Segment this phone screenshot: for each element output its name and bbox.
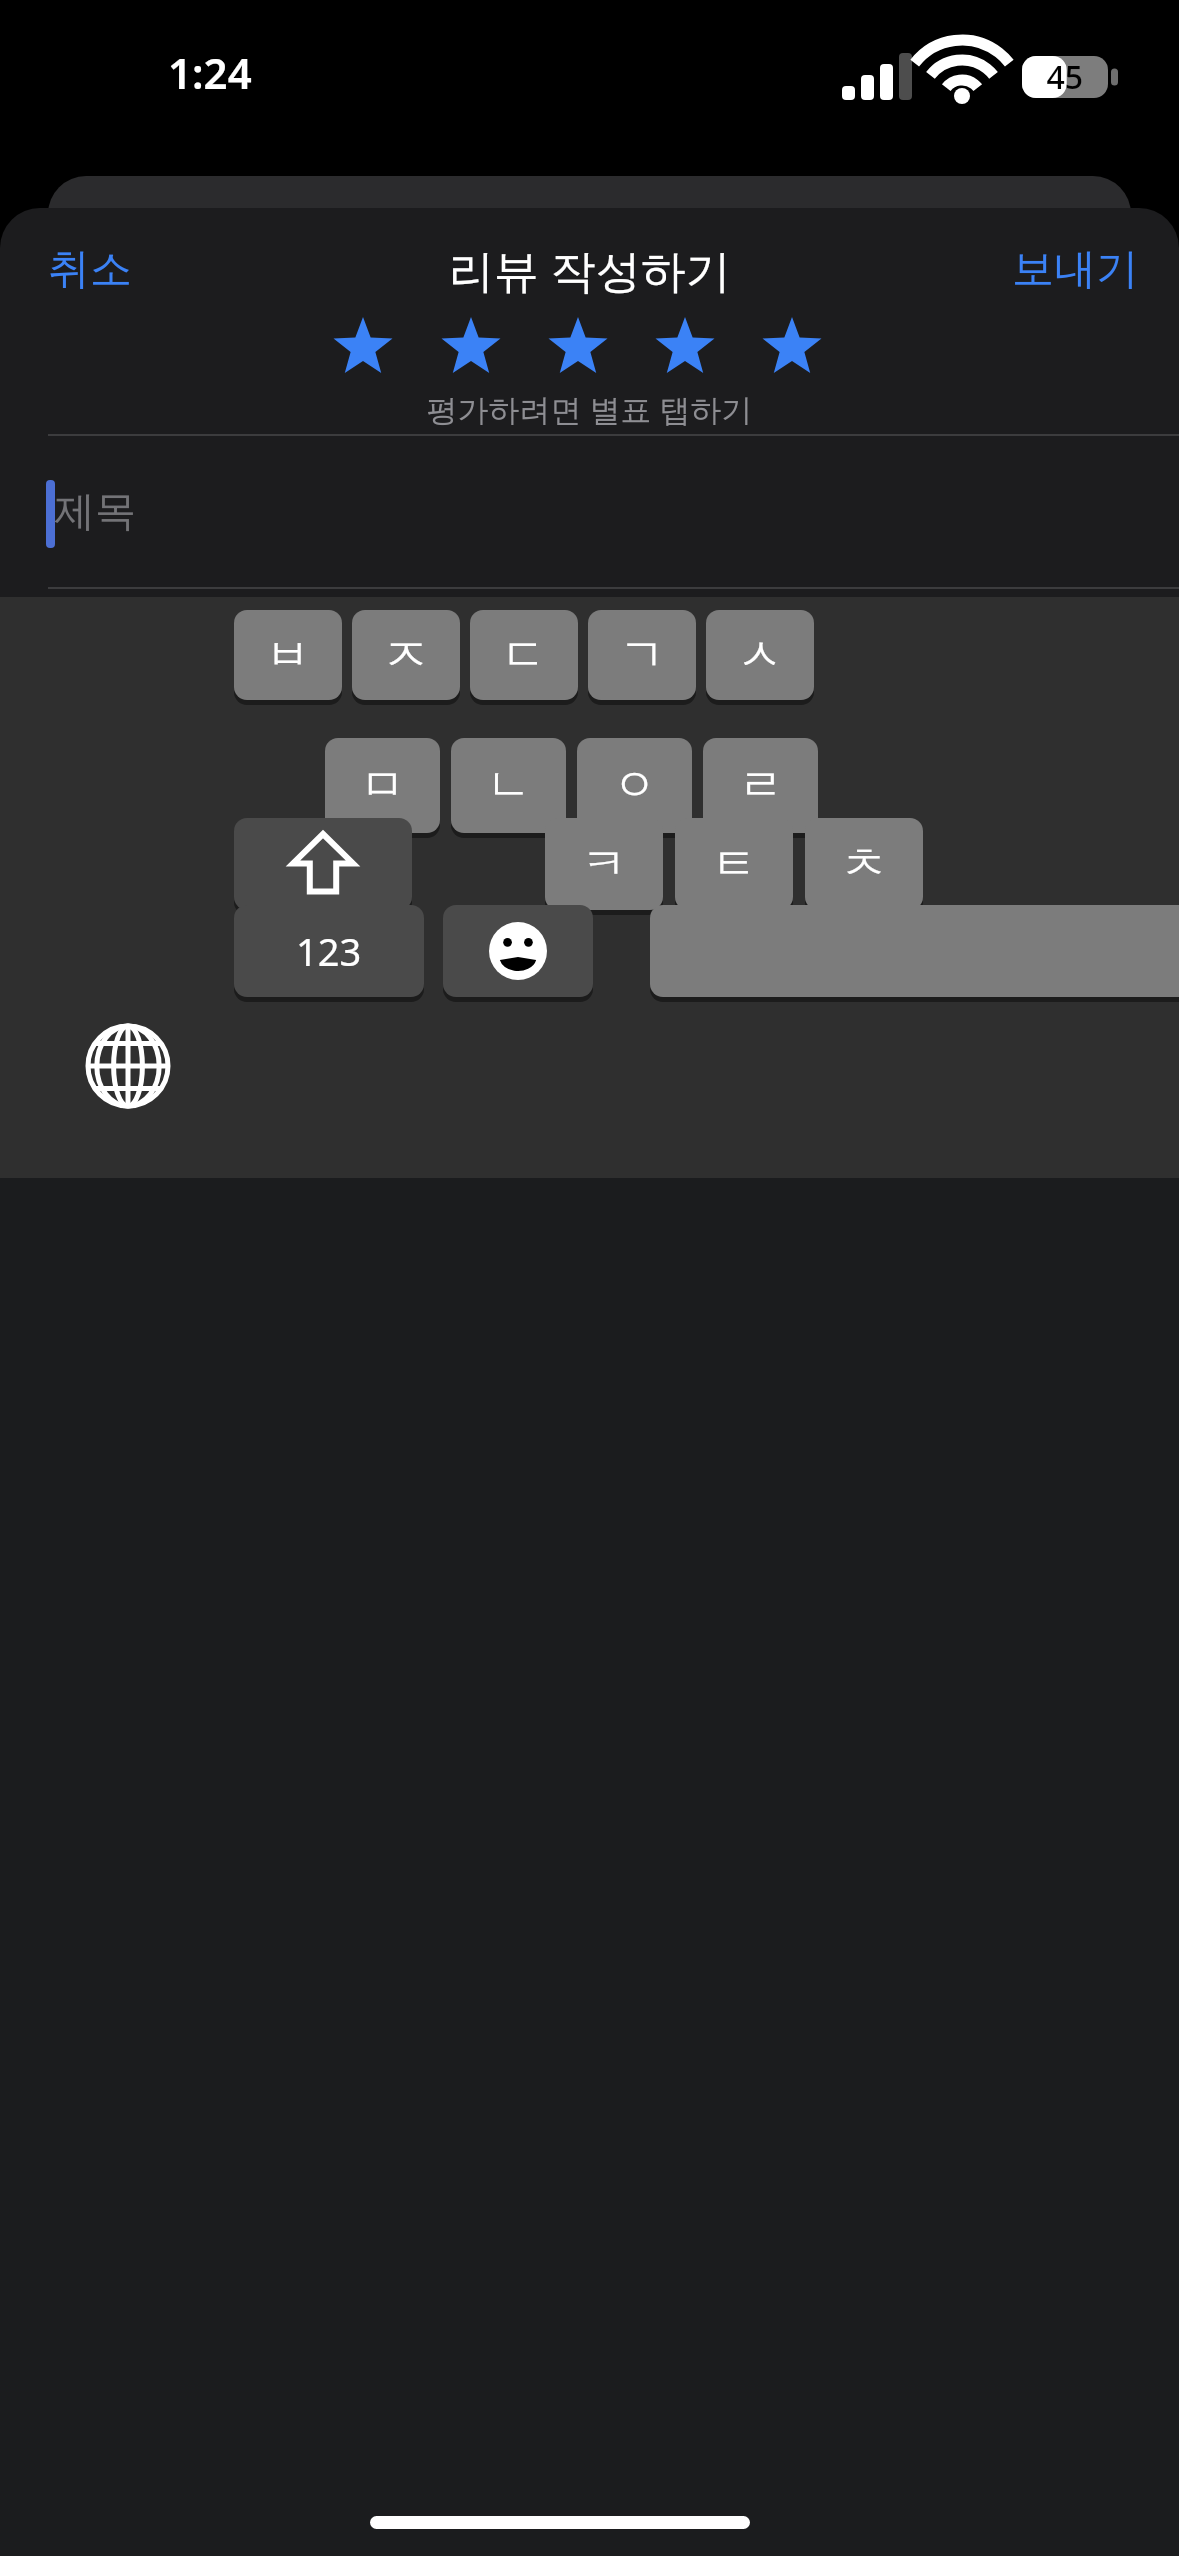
button[interactable]: ㅂ [234, 610, 342, 700]
button[interactable]: Rate with stars [320, 308, 860, 390]
button[interactable]: ㄷ [470, 610, 578, 700]
button[interactable]: ㅅ [706, 610, 814, 700]
button[interactable]: ㅈ [352, 610, 460, 700]
button[interactable]: ㄴ [451, 738, 566, 833]
button[interactable]: ㅋ [545, 818, 663, 910]
button[interactable]: 123 [234, 905, 424, 997]
button[interactable] [955, 222, 1160, 316]
button[interactable] [0, 436, 1179, 588]
button[interactable]: ㅊ [805, 818, 923, 910]
button[interactable]: Change keyboard language [86, 1024, 170, 1108]
button[interactable]: ㅌ [675, 818, 793, 910]
button[interactable]: ㅇ [577, 738, 692, 833]
button[interactable]: Shift [234, 818, 412, 910]
button[interactable] [20, 222, 220, 316]
button[interactable]: ㅁ [325, 738, 440, 833]
button[interactable]: ㄱ [588, 610, 696, 700]
button[interactable]: ㄹ [703, 738, 818, 833]
button[interactable]: Emoji [443, 905, 593, 997]
